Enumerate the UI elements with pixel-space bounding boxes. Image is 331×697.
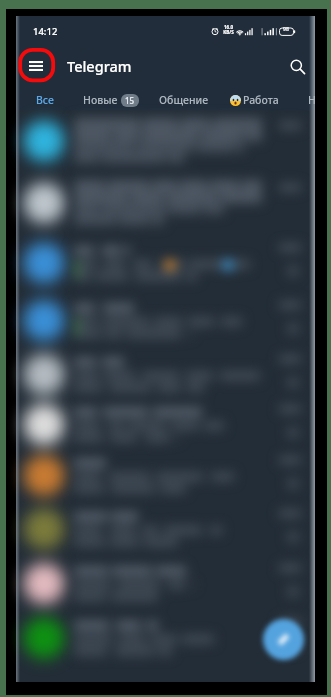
button[interactable]: Menu	[17, 47, 54, 84]
button[interactable]: Chat	[16, 234, 315, 292]
button[interactable]: Chat	[16, 292, 315, 349]
button[interactable]: Н	[302, 93, 322, 107]
button[interactable]: Общение	[153, 93, 215, 107]
staticText: 16.0 KB/S	[223, 24, 234, 35]
staticText: Общение	[159, 93, 209, 107]
staticText: 15	[125, 95, 135, 106]
button[interactable]: Chat	[16, 502, 315, 556]
button[interactable]: Chat	[16, 349, 315, 400]
button[interactable]: Chat	[16, 449, 315, 502]
button[interactable]: Chat	[16, 611, 315, 665]
button[interactable]: Chat	[16, 110, 315, 172]
staticText: Новые	[83, 93, 118, 107]
button[interactable]: Chat	[16, 556, 315, 611]
button[interactable]: Chat	[16, 172, 315, 234]
staticText: Telegram	[67, 56, 132, 76]
staticText: 14:12	[33, 25, 58, 38]
button[interactable]: Новые	[77, 93, 145, 107]
staticText: Работа	[243, 93, 279, 107]
button[interactable]: Chat	[16, 400, 315, 449]
button[interactable]: Search	[280, 49, 314, 83]
staticText: 98	[283, 25, 289, 32]
button[interactable]: Работа	[224, 93, 285, 107]
staticText: Н	[308, 93, 316, 107]
staticText: Все	[36, 93, 54, 107]
button[interactable]: New message	[263, 619, 304, 660]
button[interactable]: Все	[30, 93, 60, 107]
